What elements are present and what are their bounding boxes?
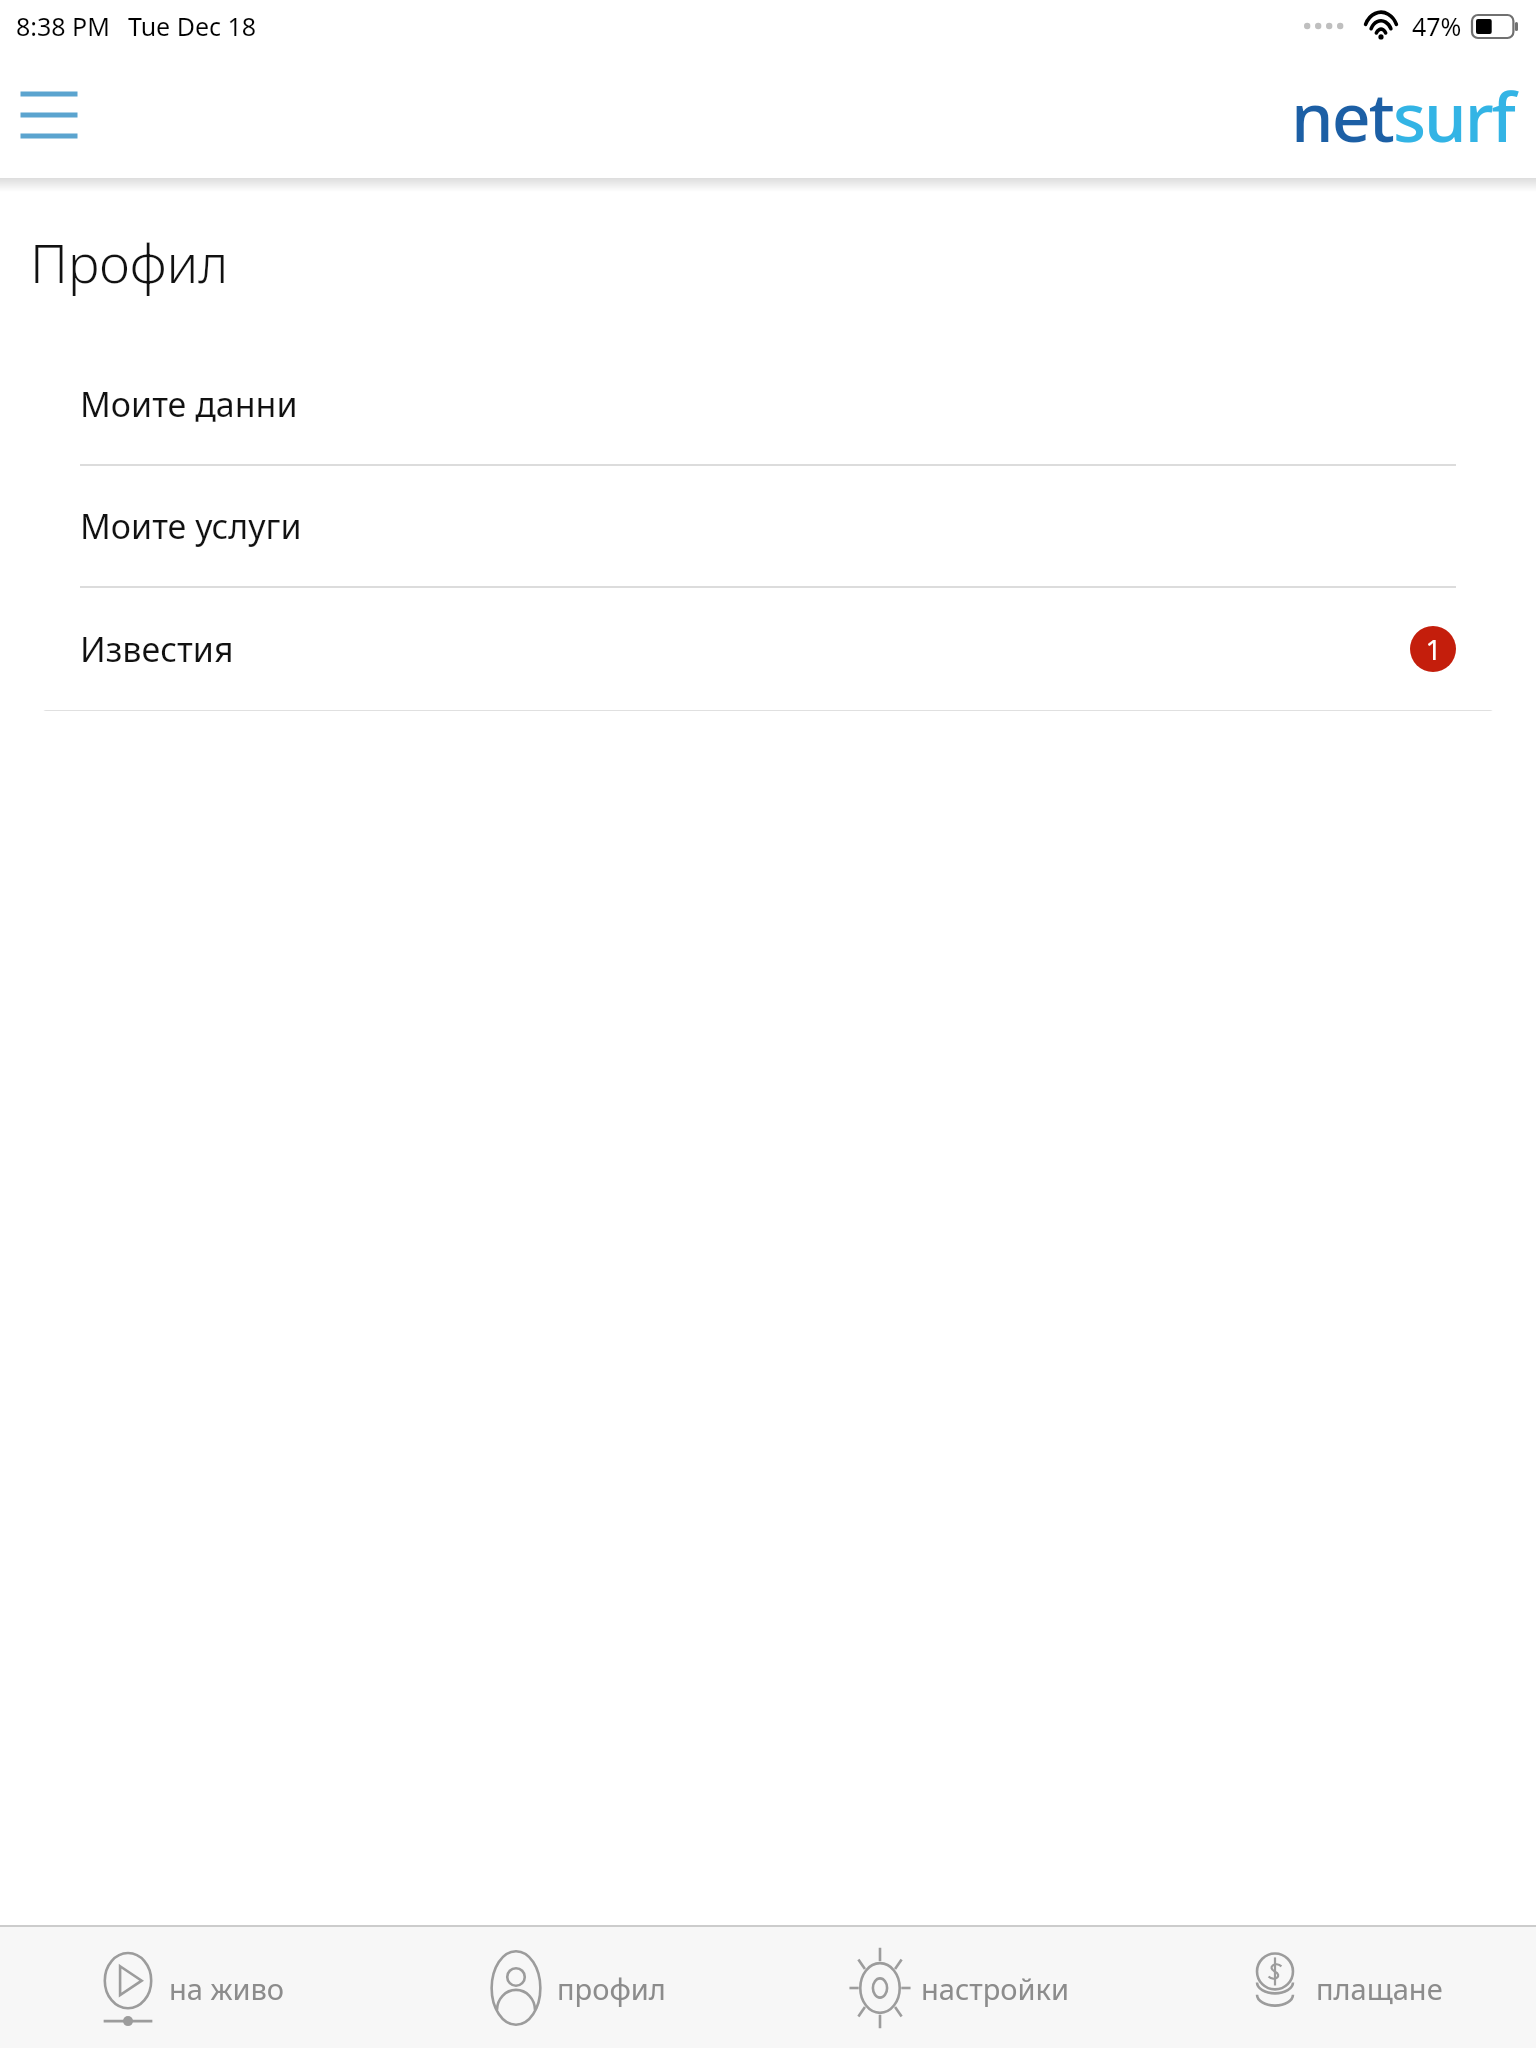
- staticText: surf: [1393, 69, 1514, 162]
- button[interactable]: netsurf home: [1291, 69, 1514, 162]
- staticText: плащане: [1316, 1969, 1443, 2008]
- button[interactable]: Известия: [40, 588, 1496, 710]
- staticText: на живо: [169, 1969, 285, 2008]
- button[interactable]: Моите услуги: [40, 466, 1496, 588]
- staticText: настройки: [921, 1969, 1069, 2008]
- staticText: профил: [557, 1969, 666, 2008]
- staticText: Моите услуги: [80, 503, 302, 549]
- button[interactable]: Menu: [8, 74, 90, 156]
- staticText: 47%: [1412, 9, 1462, 43]
- staticText: Tue Dec 18: [128, 9, 257, 43]
- staticText: net: [1291, 69, 1393, 162]
- staticText: Известия: [80, 626, 234, 672]
- button[interactable]: Моите данни: [40, 344, 1496, 466]
- other: Settings: [851, 1942, 909, 2034]
- staticText: 1: [1425, 630, 1442, 668]
- other: Profile: [487, 1942, 545, 2034]
- button[interactable]: Profile: [384, 1927, 768, 2048]
- staticText: 8:38 PM: [16, 9, 110, 43]
- staticText: Профил: [30, 226, 229, 298]
- button[interactable]: Payment: [1152, 1927, 1536, 2048]
- button[interactable]: Live: [0, 1927, 384, 2048]
- staticText: Моите данни: [80, 381, 298, 427]
- other: Live: [99, 1942, 157, 2034]
- button[interactable]: Settings: [768, 1927, 1152, 2048]
- other: Payment: [1246, 1942, 1304, 2034]
